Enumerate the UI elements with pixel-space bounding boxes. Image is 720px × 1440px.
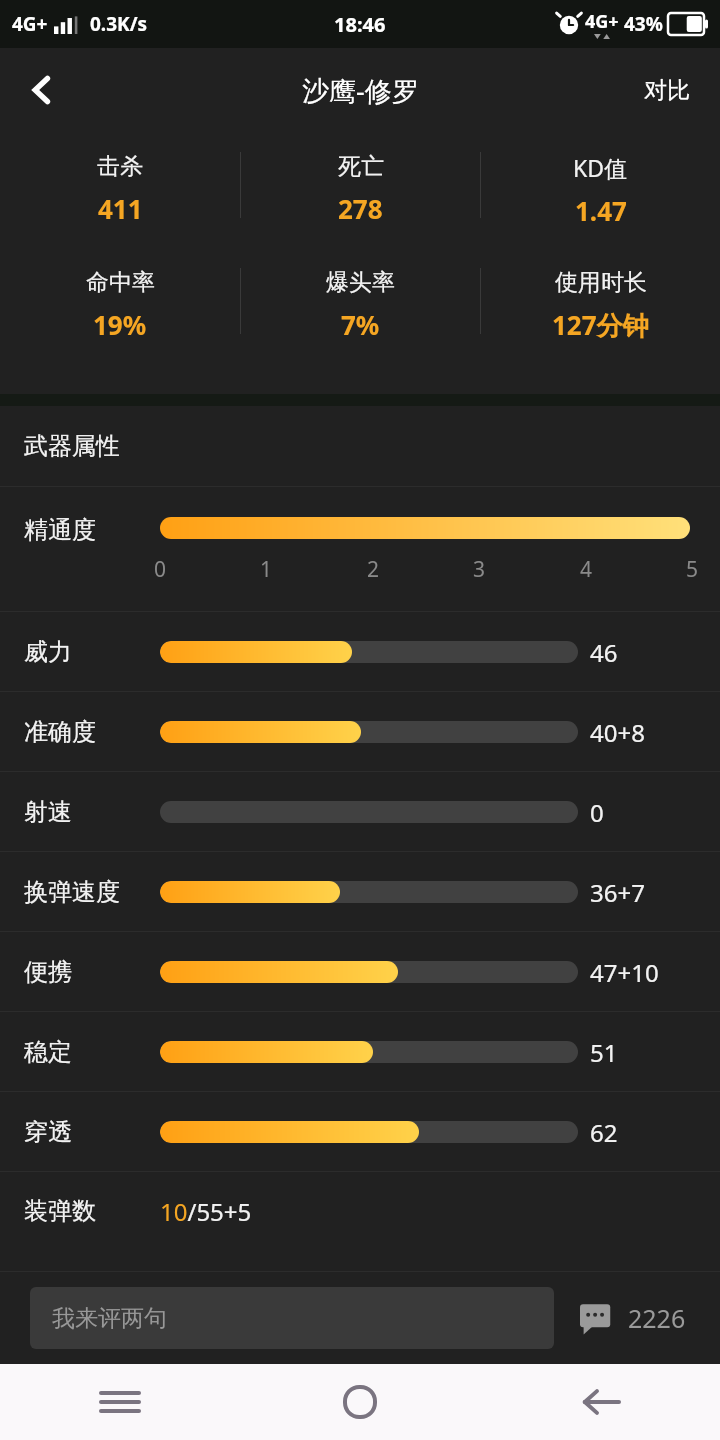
staticText: 准确度 [24,717,96,747]
staticText: 18:46 [334,11,386,38]
button[interactable]: Back [0,48,84,132]
staticText: 威力 [24,637,72,667]
staticText: 1 [254,555,278,584]
staticText: 2 [361,555,385,584]
staticText: 爆头率 [326,268,395,297]
staticText: 5 [680,555,704,584]
staticText: 击杀 [97,152,143,181]
staticText: 使用时长 [555,268,647,297]
staticText: 0 [148,555,172,584]
staticText: 精通度 [24,515,96,545]
staticText: 4 [574,555,598,584]
staticText: 43% [624,11,663,37]
staticText: 46 [590,636,618,669]
button[interactable]: Comments [576,1292,690,1344]
staticText: 2226 [628,1301,686,1335]
staticText: 命中率 [86,268,155,297]
staticText: 3 [467,555,491,584]
staticText: 4G+ [585,9,619,34]
staticText: 36+7 [590,876,645,909]
button[interactable]: Recent apps [0,1364,240,1440]
staticText: 死亡 [338,152,384,181]
button[interactable]: 对比 [636,66,698,115]
staticText: 40+8 [590,716,645,749]
staticText: 1.47 [575,193,627,228]
staticText: KD值 [573,152,628,183]
staticText: 稳定 [24,1037,72,1067]
button[interactable]: 我来评两句 [30,1287,554,1349]
staticText: 我来评两句 [52,1304,167,1333]
staticText: 10/55+5 [160,1195,252,1228]
staticText: 47+10 [590,956,659,989]
button[interactable]: Home [240,1364,480,1440]
staticText: 装弹数 [24,1196,96,1226]
staticText: 沙鹰-修罗 [302,72,419,109]
staticText: 穿透 [24,1117,72,1147]
staticText: 0 [590,796,604,829]
staticText: 127分钟 [552,307,649,343]
staticText: 51 [590,1036,618,1069]
staticText: 0.3K/s [90,11,148,37]
staticText: 射速 [24,797,72,827]
staticText: 对比 [644,76,690,105]
staticText: 便携 [24,957,72,987]
other: Comments [580,1300,616,1336]
staticText: 411 [98,191,143,226]
staticText: 7% [341,307,380,342]
staticText: 19% [93,307,147,342]
staticText: 278 [338,191,383,226]
staticText: 4G+ [12,11,48,37]
staticText: 62 [590,1116,618,1149]
staticText: 换弹速度 [24,877,120,907]
staticText: 武器属性 [24,431,120,461]
button[interactable]: Back [480,1364,720,1440]
